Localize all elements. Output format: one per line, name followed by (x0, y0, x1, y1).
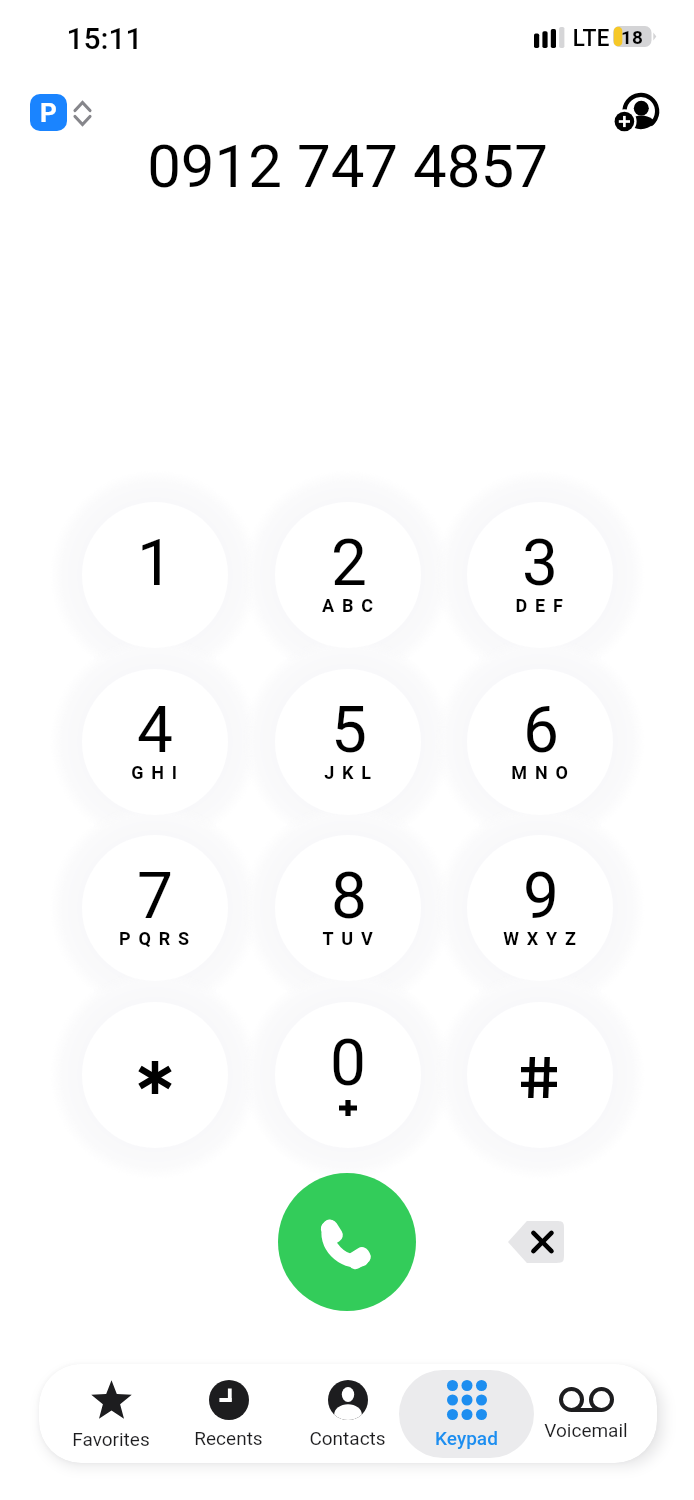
staticText: 0912 747 4857 (147, 131, 548, 201)
button[interactable]: 5 (275, 669, 421, 815)
staticText: 8 (331, 859, 367, 934)
button[interactable]: Add contact (600, 78, 668, 146)
staticText: 5 (331, 693, 367, 768)
button[interactable]: 6 (467, 669, 613, 815)
staticText: PQRS (119, 928, 197, 949)
staticText: JKL (324, 762, 379, 783)
button[interactable]: Favorites (43, 1370, 178, 1458)
button[interactable] (467, 1002, 613, 1148)
button[interactable] (82, 1002, 228, 1148)
staticText: 18 (621, 26, 643, 47)
button[interactable]: Delete (508, 1221, 564, 1263)
button[interactable]: Select phone line (30, 94, 92, 131)
staticText: GHI (131, 762, 185, 783)
staticText: 0 (330, 1026, 366, 1101)
staticText: P (40, 98, 57, 128)
staticText: 6 (523, 693, 559, 768)
button[interactable]: 3 (467, 502, 613, 648)
staticText: ABC (322, 595, 381, 616)
button[interactable]: Contacts (280, 1370, 415, 1458)
staticText: Voicemail (544, 1419, 628, 1441)
staticText: Favorites (72, 1428, 150, 1450)
staticText: TUV (322, 928, 381, 949)
button[interactable]: 9 (467, 835, 613, 981)
staticText: 7 (137, 859, 173, 934)
staticText: Contacts (309, 1427, 386, 1449)
button[interactable]: 0 (275, 1002, 421, 1148)
staticText: Keypad (435, 1427, 498, 1449)
staticText: 15:11 (66, 21, 143, 56)
staticText: LTE (572, 25, 610, 52)
staticText: 3 (522, 526, 558, 601)
button[interactable]: 8 (275, 835, 421, 981)
staticText: 1 (137, 526, 173, 601)
staticText: 9 (523, 859, 559, 934)
staticText: 2 (331, 526, 367, 601)
button[interactable]: 1 (82, 502, 228, 648)
button[interactable]: 4 (82, 669, 228, 815)
button[interactable]: 2 (275, 502, 421, 648)
button[interactable]: Voicemail (518, 1370, 653, 1458)
staticText: WXYZ (503, 928, 584, 949)
button[interactable]: Recents (161, 1370, 296, 1458)
button[interactable]: Keypad (399, 1370, 534, 1458)
button[interactable]: 7 (82, 835, 228, 981)
staticText: 4 (137, 693, 173, 768)
staticText: DEF (515, 595, 571, 616)
staticText: Recents (194, 1427, 263, 1449)
button[interactable]: Call (278, 1173, 416, 1311)
staticText: MNO (511, 762, 576, 783)
